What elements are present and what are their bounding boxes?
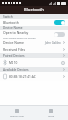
staticText: Received Files: [3, 47, 63, 52]
staticText: Bluetooth: [24, 7, 44, 13]
staticText: Paired Devices: [3, 54, 25, 58]
button[interactable]: Received Files: [0, 46, 68, 53]
button[interactable]: MI 10: [0, 58, 68, 67]
staticText: Switch: [3, 15, 13, 19]
staticText: John Galileo: [45, 41, 61, 45]
staticText: Open to Nearby: [3, 30, 29, 35]
button[interactable]: Turn on: [54, 32, 65, 37]
staticText: Device Name: [3, 26, 23, 30]
staticText: Device Name: [3, 40, 45, 45]
staticText: MI 10: [9, 61, 60, 65]
button[interactable]: 80:3B:18:27:41:AC: [0, 72, 68, 81]
staticText: 80:3B:18:27:41:AC: [9, 75, 63, 79]
button[interactable]: Search Scan: [0, 106, 34, 120]
staticText: Search Scan: [10, 114, 25, 117]
staticText: Bluetooth: [3, 20, 19, 25]
button[interactable]: More: [34, 106, 68, 120]
staticText: Only visible when on screen: [3, 36, 36, 39]
staticText: More: [48, 114, 55, 117]
button[interactable]: Open to Nearby: [0, 30, 68, 39]
button[interactable]: Device Name: [0, 39, 68, 46]
button[interactable]: Device settings: [60, 60, 65, 65]
button[interactable]: Turn off: [54, 20, 65, 25]
button[interactable]: Bluetooth: [0, 19, 68, 26]
staticText: Available Devices: [3, 68, 29, 72]
